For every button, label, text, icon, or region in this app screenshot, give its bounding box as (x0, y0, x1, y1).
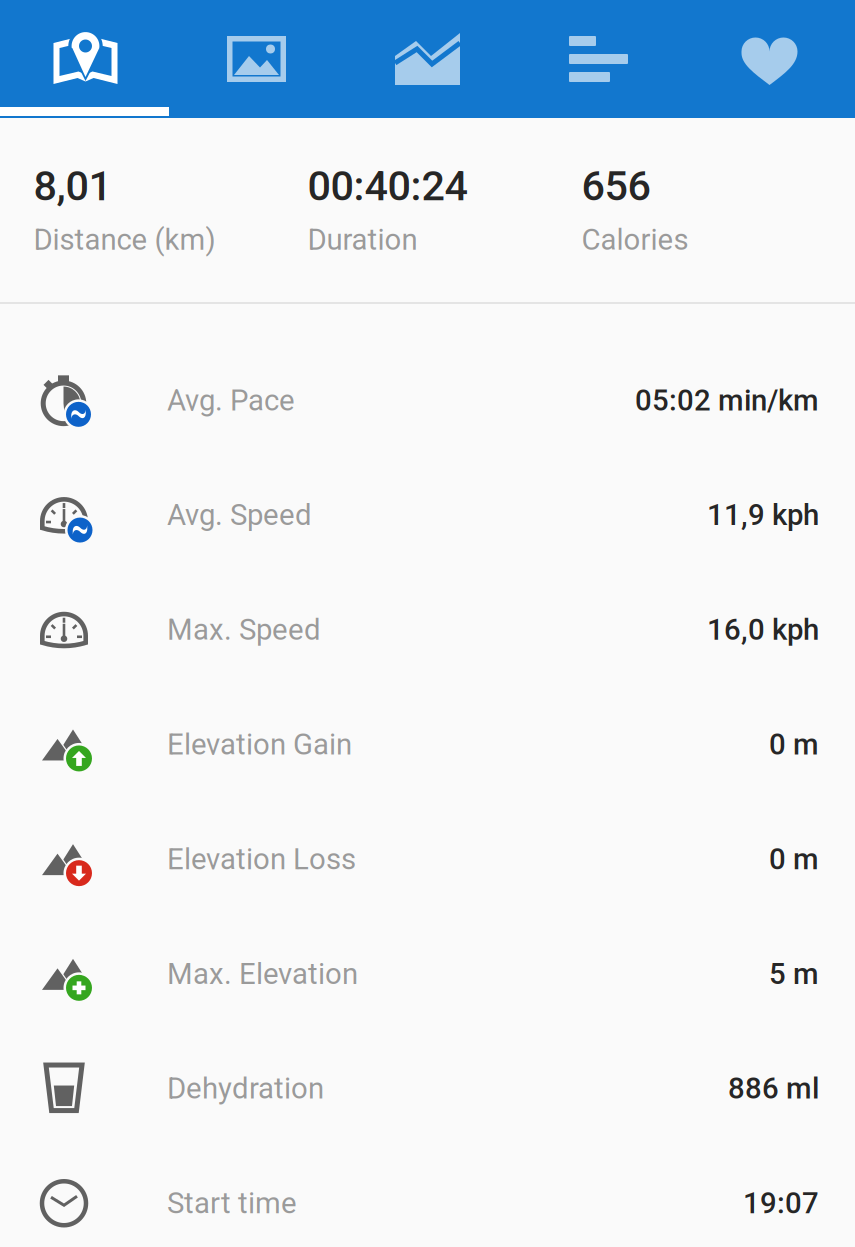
button[interactable]: Avg. Pace (0, 343, 855, 458)
staticText: 0 m (769, 842, 819, 876)
staticText: 11,9 kph (707, 498, 819, 532)
button[interactable]: Heart rate (684, 0, 855, 118)
staticText: Dehydration (167, 1071, 324, 1106)
staticText: 886 ml (728, 1071, 819, 1106)
staticText: 8,01 (33, 162, 111, 210)
staticText: 05:02 min/km (635, 383, 819, 418)
button[interactable]: Max. Speed (0, 572, 855, 687)
staticText: Avg. Speed (167, 498, 312, 532)
staticText: 0 m (769, 727, 819, 762)
button[interactable]: Graphs (342, 0, 513, 118)
button[interactable]: Avg. Speed (0, 458, 855, 572)
button[interactable]: Splits (513, 0, 684, 118)
button[interactable]: Max. Elevation (0, 916, 855, 1031)
staticText: Avg. Pace (167, 383, 295, 418)
button[interactable]: Map (0, 0, 171, 118)
button[interactable]: Photos (171, 0, 342, 118)
staticText: 16,0 kph (707, 613, 819, 647)
staticText: 5 m (769, 957, 819, 991)
staticText: Max. Speed (167, 613, 321, 647)
button[interactable]: Elevation Loss (0, 802, 855, 916)
staticText: Elevation Gain (167, 727, 352, 762)
button[interactable]: Start time (0, 1146, 855, 1247)
staticText: Max. Elevation (167, 957, 358, 991)
staticText: 19:07 (743, 1186, 819, 1220)
staticText: Calories (581, 222, 688, 257)
staticText: Start time (167, 1186, 297, 1220)
staticText: Distance (km) (33, 222, 215, 257)
staticText: 00:40:24 (307, 162, 467, 210)
button[interactable]: Dehydration (0, 1031, 855, 1146)
staticText: Elevation Loss (167, 842, 356, 876)
button[interactable]: Elevation Gain (0, 687, 855, 802)
staticText: Duration (307, 222, 417, 257)
staticText: 656 (581, 162, 650, 210)
